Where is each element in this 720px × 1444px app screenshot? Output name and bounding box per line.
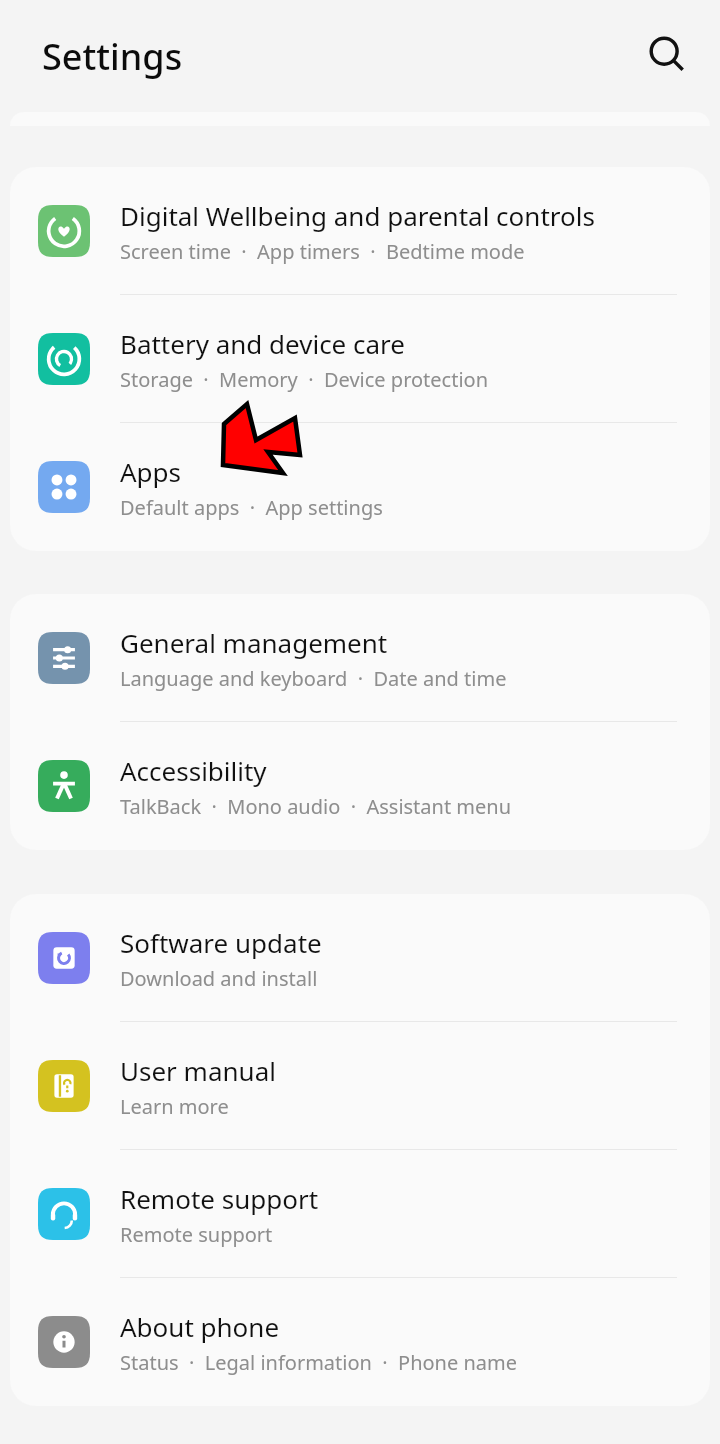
staticText: Download and install — [120, 965, 318, 992]
staticText: Screen time · App timers · Bedtime mode — [120, 238, 525, 265]
button[interactable]: Search — [638, 26, 698, 86]
button[interactable]: Software update — [10, 894, 710, 1022]
staticText: Digital Wellbeing and parental controls — [120, 198, 595, 233]
button[interactable]: General management — [10, 594, 710, 722]
button[interactable]: Remote support — [10, 1150, 710, 1278]
staticText: Battery and device care — [120, 326, 405, 361]
staticText: Language and keyboard · Date and time — [120, 665, 507, 692]
button[interactable]: Accessibility — [10, 722, 710, 850]
staticText: Remote support — [120, 1221, 273, 1248]
button[interactable]: About phone — [10, 1278, 710, 1406]
button[interactable]: Digital Wellbeing and parental controls — [10, 167, 710, 295]
button[interactable]: Apps — [10, 423, 710, 551]
button[interactable]: Battery and device care — [10, 295, 710, 423]
staticText: Apps — [120, 454, 182, 489]
staticText: TalkBack · Mono audio · Assistant menu — [120, 793, 512, 820]
staticText: Status · Legal information · Phone name — [120, 1349, 518, 1376]
staticText: Storage · Memory · Device protection — [120, 366, 489, 393]
staticText: User manual — [120, 1053, 276, 1088]
button[interactable]: User manual — [10, 1022, 710, 1150]
staticText: Default apps · App settings — [120, 494, 383, 521]
staticText: Settings — [42, 32, 183, 81]
staticText: Software update — [120, 925, 322, 960]
staticText: About phone — [120, 1309, 280, 1344]
staticText: Learn more — [120, 1093, 229, 1120]
staticText: General management — [120, 625, 388, 660]
staticText: Accessibility — [120, 753, 267, 788]
staticText: Remote support — [120, 1181, 319, 1216]
